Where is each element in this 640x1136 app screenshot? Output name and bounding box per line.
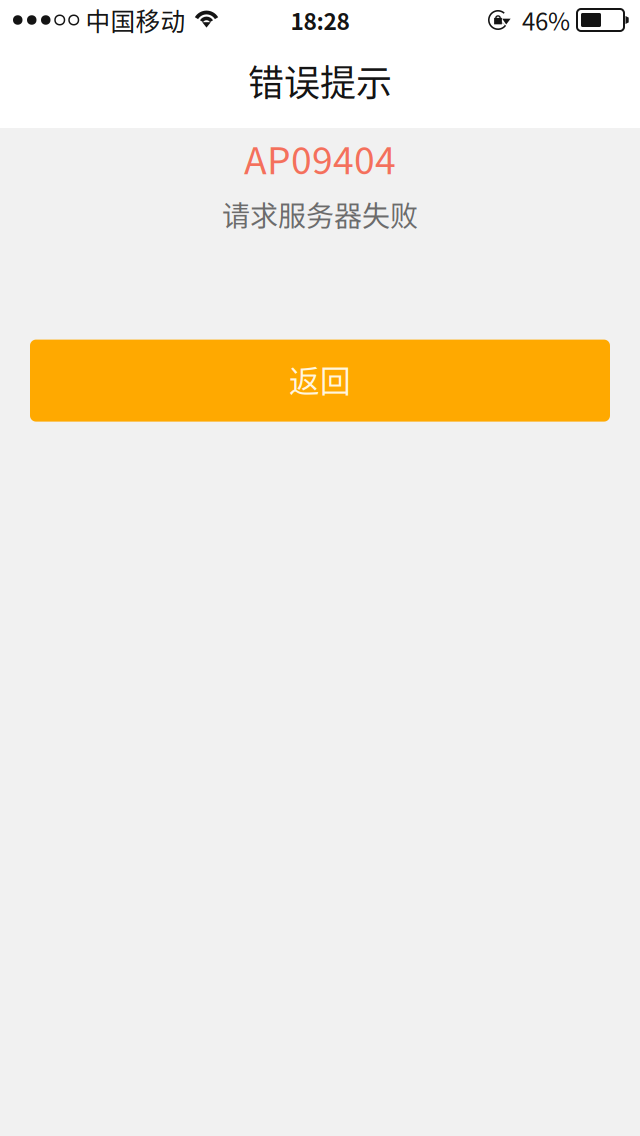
staticText: 中国移动: [85, 2, 185, 38]
staticText: 错误提示: [248, 54, 392, 106]
staticText: 请求服务器失败: [222, 194, 418, 235]
staticText: 46%: [522, 3, 570, 37]
button[interactable]: 返回: [30, 340, 610, 422]
staticText: 18:28: [290, 4, 349, 36]
staticText: 返回: [289, 357, 351, 401]
staticText: AP09404: [244, 131, 396, 185]
